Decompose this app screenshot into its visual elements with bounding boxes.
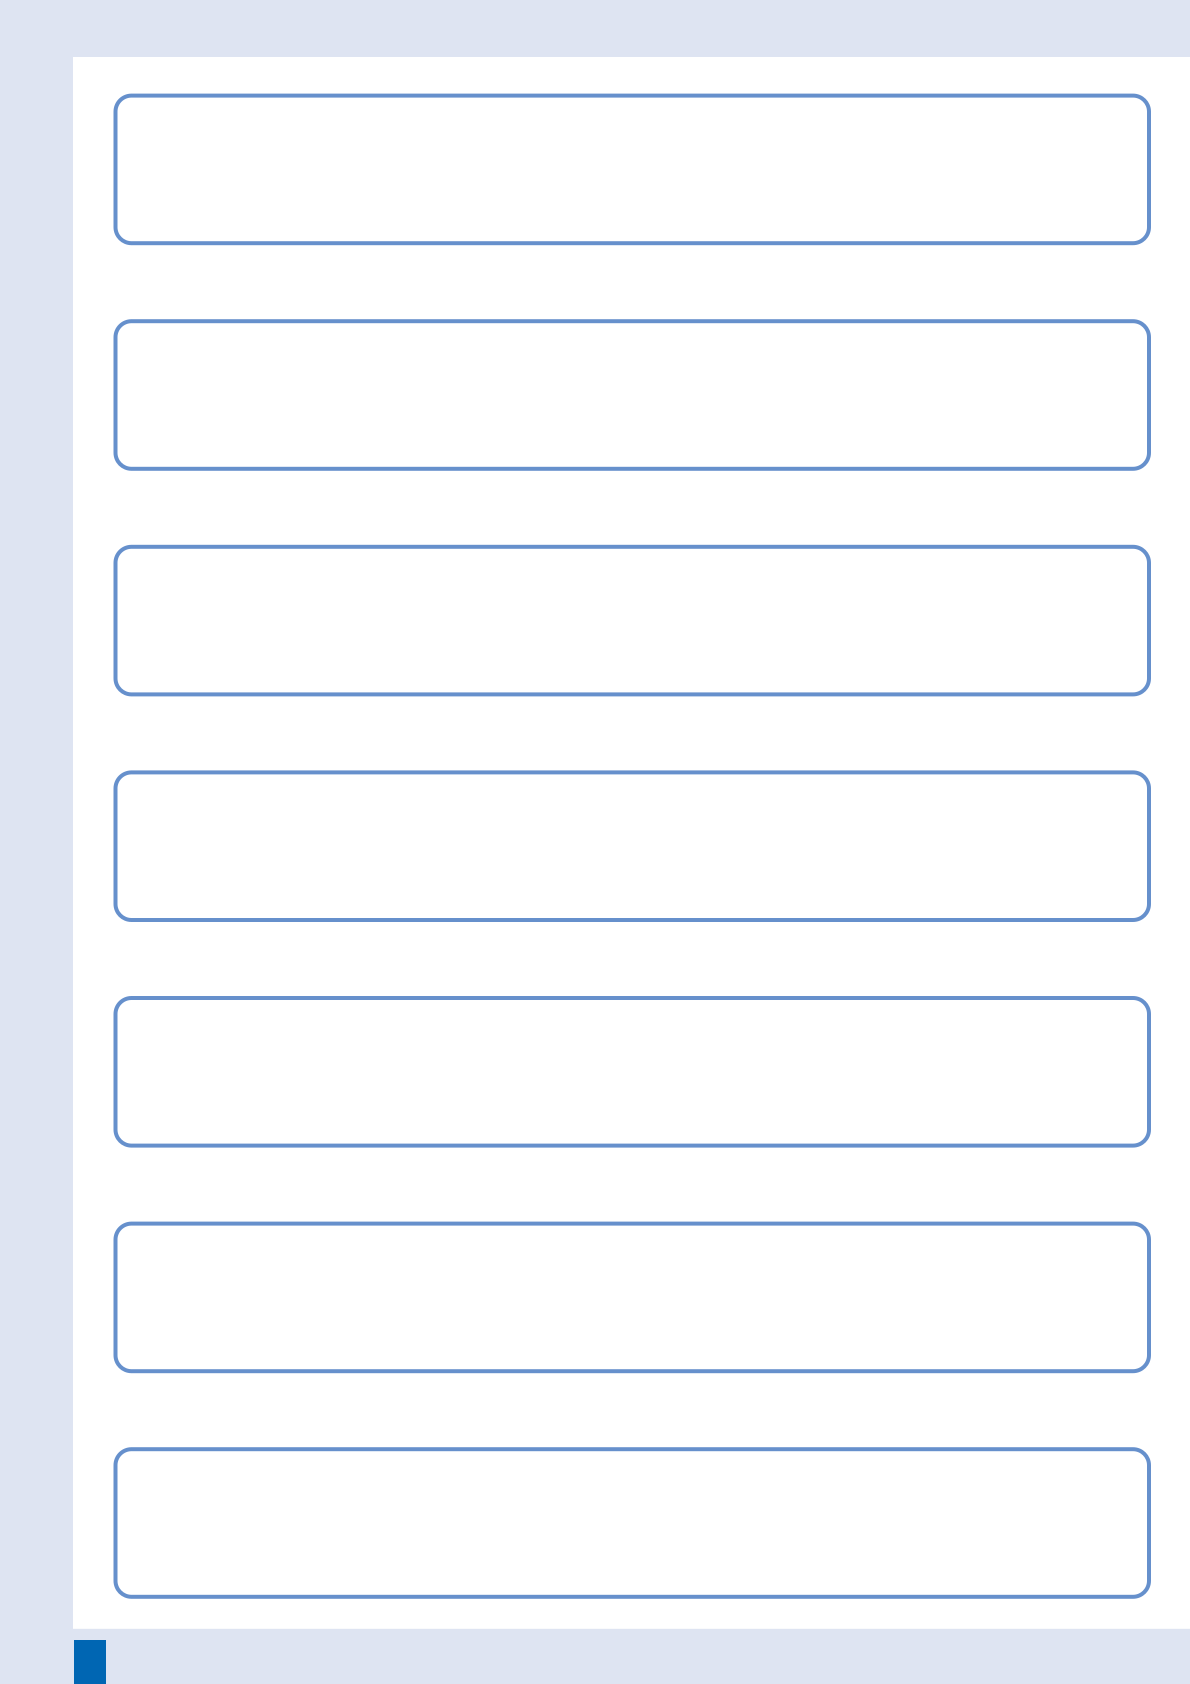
button[interactable]: Text field <box>115 96 1149 243</box>
button[interactable]: Text field <box>115 998 1149 1146</box>
button[interactable]: Text field <box>115 772 1149 920</box>
button[interactable]: Text field <box>115 1224 1149 1371</box>
button[interactable]: Text field <box>115 321 1149 469</box>
button[interactable]: Text field <box>115 547 1149 694</box>
button[interactable]: Text field <box>115 1449 1149 1597</box>
